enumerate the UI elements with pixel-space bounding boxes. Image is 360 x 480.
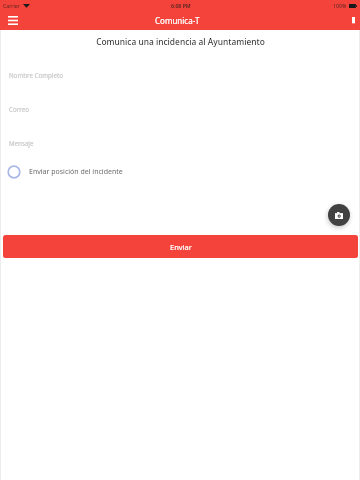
button[interactable]: Menu (4, 11, 22, 29)
staticText: Comunica-T (155, 15, 200, 26)
staticText: Correo (9, 105, 29, 113)
button[interactable]: More options (345, 12, 360, 28)
button[interactable]: Mensaje (0, 136, 360, 150)
staticText: 6:08 PM (171, 2, 191, 9)
button[interactable]: Take photo (328, 204, 350, 226)
staticText: Mensaje (9, 139, 34, 147)
button[interactable]: Nombre Completo (0, 68, 360, 82)
button[interactable]: Correo (0, 102, 360, 116)
staticText: 100% (333, 2, 347, 9)
staticText: Comunica una incidencia al Ayuntamiento (96, 36, 265, 47)
button[interactable]: Enviar (3, 235, 358, 258)
button[interactable]: Enviar posición del incidente (0, 162, 360, 182)
staticText: Carrier (3, 2, 20, 9)
staticText: Nombre Completo (9, 71, 63, 79)
staticText: Enviar (170, 242, 192, 252)
staticText: Enviar posición del incidente (29, 167, 123, 177)
